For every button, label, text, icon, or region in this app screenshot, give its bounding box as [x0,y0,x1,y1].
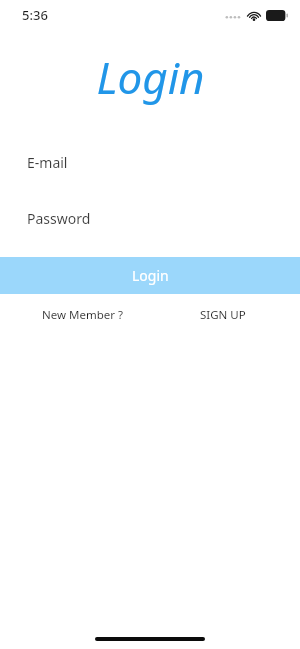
button[interactable]: SIGN UP [198,304,248,326]
button[interactable]: Login [0,257,300,294]
staticText: SIGN UP [200,307,246,323]
other: Home indicator [95,637,205,641]
staticText: E-mail [27,153,68,172]
button[interactable]: New Member ? [40,304,125,326]
staticText: Login [96,47,205,107]
button[interactable]: E-mail [0,145,300,179]
staticText: Password [27,209,91,228]
staticText: New Member ? [42,307,123,323]
button[interactable]: Password [0,201,300,235]
staticText: Login [132,266,169,285]
staticText: 5:36 [22,6,48,24]
